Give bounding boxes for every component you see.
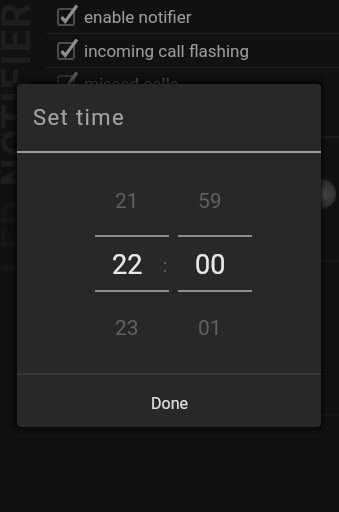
staticText: Set time <box>33 105 126 131</box>
staticText: 22 <box>112 249 143 281</box>
staticText: missed calls <box>84 74 179 94</box>
button[interactable]: 01 <box>173 302 247 354</box>
staticText: 59 <box>198 189 222 214</box>
staticText: 01 <box>198 316 222 341</box>
button[interactable]: incoming call flashing <box>46 34 339 68</box>
button[interactable]: missed calls <box>46 67 339 101</box>
button[interactable]: 00 <box>173 239 247 291</box>
button[interactable]: 59 <box>173 175 247 227</box>
button[interactable]: 22 <box>90 239 164 291</box>
button[interactable]: Done <box>17 375 321 427</box>
staticText: Done <box>151 394 188 413</box>
button[interactable]: 23 <box>90 302 164 354</box>
staticText: : <box>163 255 168 276</box>
button[interactable]: 21 <box>90 175 164 227</box>
staticText: 23 <box>115 316 139 341</box>
staticText: incoming call flashing <box>84 41 250 61</box>
staticText: 21 <box>115 189 139 214</box>
staticText: 00 <box>195 249 226 281</box>
staticText: enable notifier <box>84 7 192 27</box>
button[interactable]: enable notifier <box>46 0 339 34</box>
